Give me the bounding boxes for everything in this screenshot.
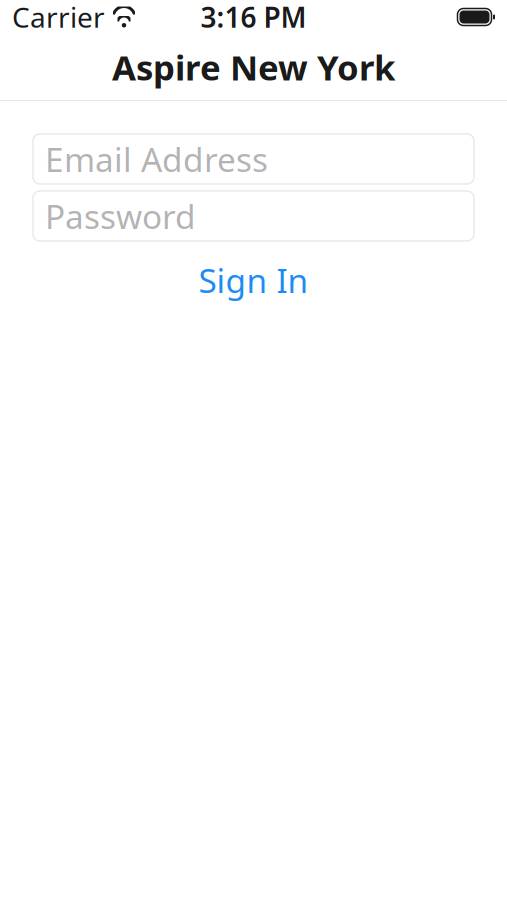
staticText: Sign In <box>198 258 308 302</box>
staticText: Aspire New York <box>112 44 395 90</box>
staticText: Password <box>45 194 196 238</box>
button[interactable]: Password <box>33 191 474 241</box>
staticText: 3:16 PM <box>200 0 306 36</box>
button[interactable]: Sign In <box>33 248 474 312</box>
staticText: Email Address <box>45 137 268 181</box>
button[interactable]: Email Address <box>33 134 474 184</box>
staticText: Carrier <box>12 0 105 36</box>
